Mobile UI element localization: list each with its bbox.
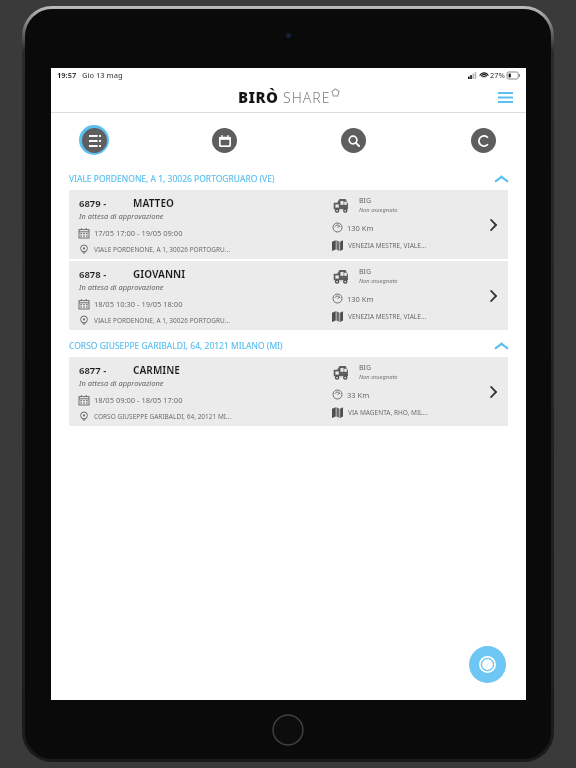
staticText: BIG	[359, 363, 372, 373]
staticText: MATTEO	[133, 196, 174, 210]
staticText: 6878 -	[79, 268, 107, 281]
button[interactable]: 6878 -	[69, 261, 508, 330]
staticText: CORSO GIUSEPPE GARIBALDI, 64, 20121 MI..…	[94, 412, 232, 421]
staticText: BIG	[359, 196, 372, 206]
staticText: BIG	[359, 267, 372, 277]
staticText: VIALE PORDENONE, A 1, 30026 PORTOGRU...	[94, 245, 230, 254]
button[interactable]: List	[79, 125, 109, 155]
staticText: 130 Km	[347, 294, 374, 304]
staticText: 6877 -	[79, 364, 107, 377]
button[interactable]: Calendar	[209, 125, 239, 155]
staticText: BIRÒ	[238, 87, 279, 107]
button[interactable]: 6879 -	[69, 190, 508, 259]
staticText: VIALE PORDENONE, A 1, 30026 PORTOGRU...	[94, 316, 230, 325]
staticText: VIA MAGENTA, RHO, MIL...	[348, 408, 428, 417]
staticText: 17/05 17:00 - 19/05 09:00	[94, 228, 183, 238]
staticText: CORSO GIUSEPPE GARIBALDI, 64, 20121 MILA…	[69, 340, 283, 352]
button[interactable]: 6877 -	[69, 357, 508, 426]
staticText: In attesa di approvazione	[79, 282, 164, 292]
staticText: Non assegnato	[359, 277, 398, 285]
staticText: VENEZIA MESTRE, VIALE...	[348, 312, 427, 321]
button[interactable]: Refresh	[468, 125, 498, 155]
button[interactable]: VIALE PORDENONE, A 1, 30026 PORTOGRUARO …	[69, 171, 508, 187]
staticText: GIOVANNI	[133, 267, 186, 281]
button[interactable]: Search	[338, 125, 368, 155]
staticText: 18/05 09:00 - 18/05 17:00	[94, 395, 183, 405]
staticText: CARMINE	[133, 363, 180, 377]
staticText: 33 Km	[347, 390, 370, 400]
staticText: 27%	[490, 70, 505, 80]
staticText: VENEZIA MESTRE, VIALE...	[348, 241, 427, 250]
staticText: Non assegnato	[359, 373, 398, 381]
button[interactable]: Navigate	[469, 646, 506, 683]
staticText: VIALE PORDENONE, A 1, 30026 PORTOGRUARO …	[69, 173, 275, 185]
staticText: 6879 -	[79, 197, 107, 210]
staticText: In attesa di approvazione	[79, 211, 164, 221]
staticText: SHARE	[283, 88, 331, 107]
staticText: Non assegnato	[359, 206, 398, 214]
button[interactable]: CORSO GIUSEPPE GARIBALDI, 64, 20121 MILA…	[69, 338, 508, 354]
staticText: 130 Km	[347, 223, 374, 233]
staticText: 18/05 10:30 - 19/05 18:00	[94, 299, 183, 309]
staticText: 19:57	[57, 70, 77, 80]
staticText: In attesa di approvazione	[79, 378, 164, 388]
staticText: Gio 13 mag	[82, 70, 123, 80]
button[interactable]: Menu	[492, 84, 518, 110]
